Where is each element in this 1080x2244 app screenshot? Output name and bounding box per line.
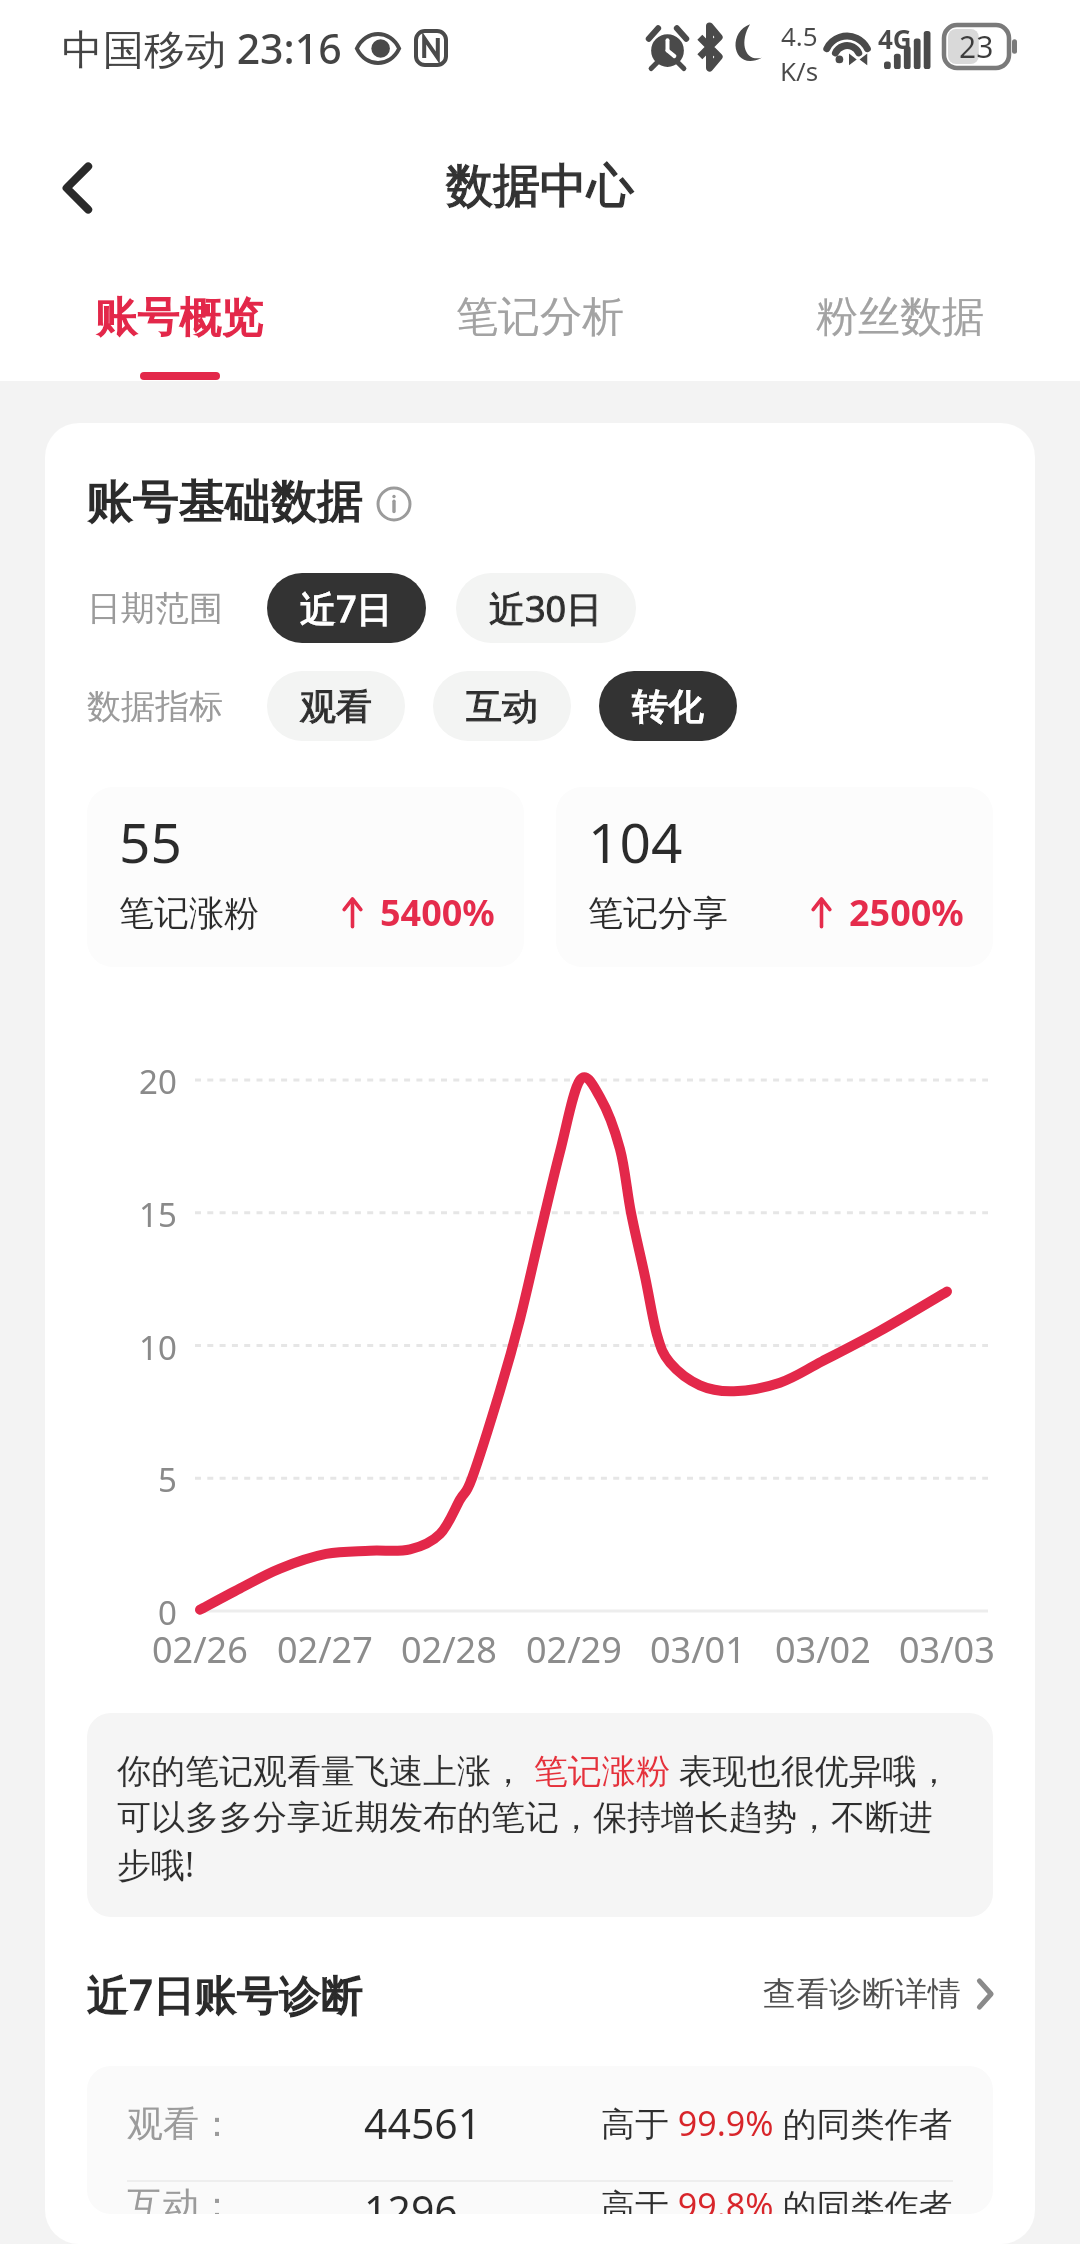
button[interactable]: 观看 xyxy=(267,671,405,741)
staticText: 03/02 xyxy=(775,1625,871,1674)
staticText: 近7日 xyxy=(300,584,393,633)
staticText: 笔记涨粉 xyxy=(119,891,259,935)
other: Info xyxy=(377,487,411,521)
button[interactable]: 近7日 xyxy=(267,573,426,643)
staticText: 笔记分析 xyxy=(456,291,624,344)
button[interactable]: 笔记分析 xyxy=(360,270,720,381)
staticText: 账号基础数据 xyxy=(87,473,363,531)
staticText: 近7日 xyxy=(300,584,393,633)
staticText: 03/03 xyxy=(899,1625,995,1674)
staticText: 账号概览 xyxy=(96,291,264,344)
staticText: 中国移动 23:16 xyxy=(62,20,342,76)
staticText: 02/29 xyxy=(526,1625,622,1674)
staticText: 查看诊断详情 xyxy=(763,1973,961,2015)
staticText: 近30日 xyxy=(489,584,603,633)
staticText: 你的笔记观看量飞速上涨， 笔记涨粉 表现也很优异哦， 可以多多分享近期发布的笔记… xyxy=(117,1747,951,1887)
button[interactable]: Back xyxy=(12,118,142,248)
staticText: 23 xyxy=(959,26,994,67)
staticText: 02/26 xyxy=(152,1625,248,1674)
button[interactable]: 互动 xyxy=(433,671,571,741)
staticText: 02/28 xyxy=(401,1625,497,1674)
staticText: 15 xyxy=(139,1192,177,1237)
staticText: 高于 99.8% 的同类作者 xyxy=(601,2182,953,2214)
staticText: 笔记分享 xyxy=(588,891,728,935)
staticText: 转化 xyxy=(632,684,704,729)
staticText: 104 xyxy=(588,804,683,879)
button[interactable]: 账号概览 xyxy=(0,270,360,381)
staticText: 0 xyxy=(158,1590,177,1635)
staticText: 20 xyxy=(139,1059,177,1104)
staticText: 55 xyxy=(119,804,182,879)
staticText: 日期范围 xyxy=(87,587,223,630)
staticText: 互动 xyxy=(466,684,538,729)
staticText: 44561 xyxy=(364,2095,482,2151)
staticText: 转化 xyxy=(632,684,704,729)
staticText: 03/01 xyxy=(650,1625,746,1674)
button[interactable]: 转化 xyxy=(599,671,737,741)
staticText: 1296 xyxy=(364,2182,458,2214)
staticText: K/s xyxy=(780,53,819,88)
staticText: 账号概览 xyxy=(96,291,264,344)
staticText: 观看 xyxy=(300,684,372,729)
button[interactable]: 查看诊断详情 xyxy=(763,1973,993,2015)
staticText: 5 xyxy=(158,1457,177,1502)
button[interactable]: 粉丝数据 xyxy=(720,270,1080,381)
staticText: 02/27 xyxy=(277,1625,373,1674)
staticText: 互动 xyxy=(466,684,538,729)
staticText: 观看： xyxy=(127,2101,235,2146)
staticText: 互动： xyxy=(127,2182,235,2214)
staticText: 4G xyxy=(878,21,912,56)
button[interactable]: 近30日 xyxy=(456,573,636,643)
staticText: 10 xyxy=(139,1325,177,1370)
staticText: 近30日 xyxy=(489,584,603,633)
staticText: 数据中心 xyxy=(446,157,634,216)
staticText: 观看 xyxy=(300,684,372,729)
staticText: 近7日账号诊断 xyxy=(87,1965,364,2022)
staticText: 4.5 xyxy=(781,18,818,53)
staticText: 近7日账号诊断 xyxy=(87,1965,364,2022)
staticText: 粉丝数据 xyxy=(816,291,984,344)
staticText: 2500% xyxy=(849,888,964,937)
staticText: 5400% xyxy=(380,888,495,937)
button[interactable]: 55 xyxy=(87,787,524,967)
staticText: 账号基础数据 xyxy=(87,473,363,531)
button[interactable]: 104 xyxy=(556,787,993,967)
staticText: 数据中心 xyxy=(446,157,634,216)
staticText: 高于 99.9% 的同类作者 xyxy=(601,2100,953,2146)
staticText: 数据指标 xyxy=(87,685,223,728)
